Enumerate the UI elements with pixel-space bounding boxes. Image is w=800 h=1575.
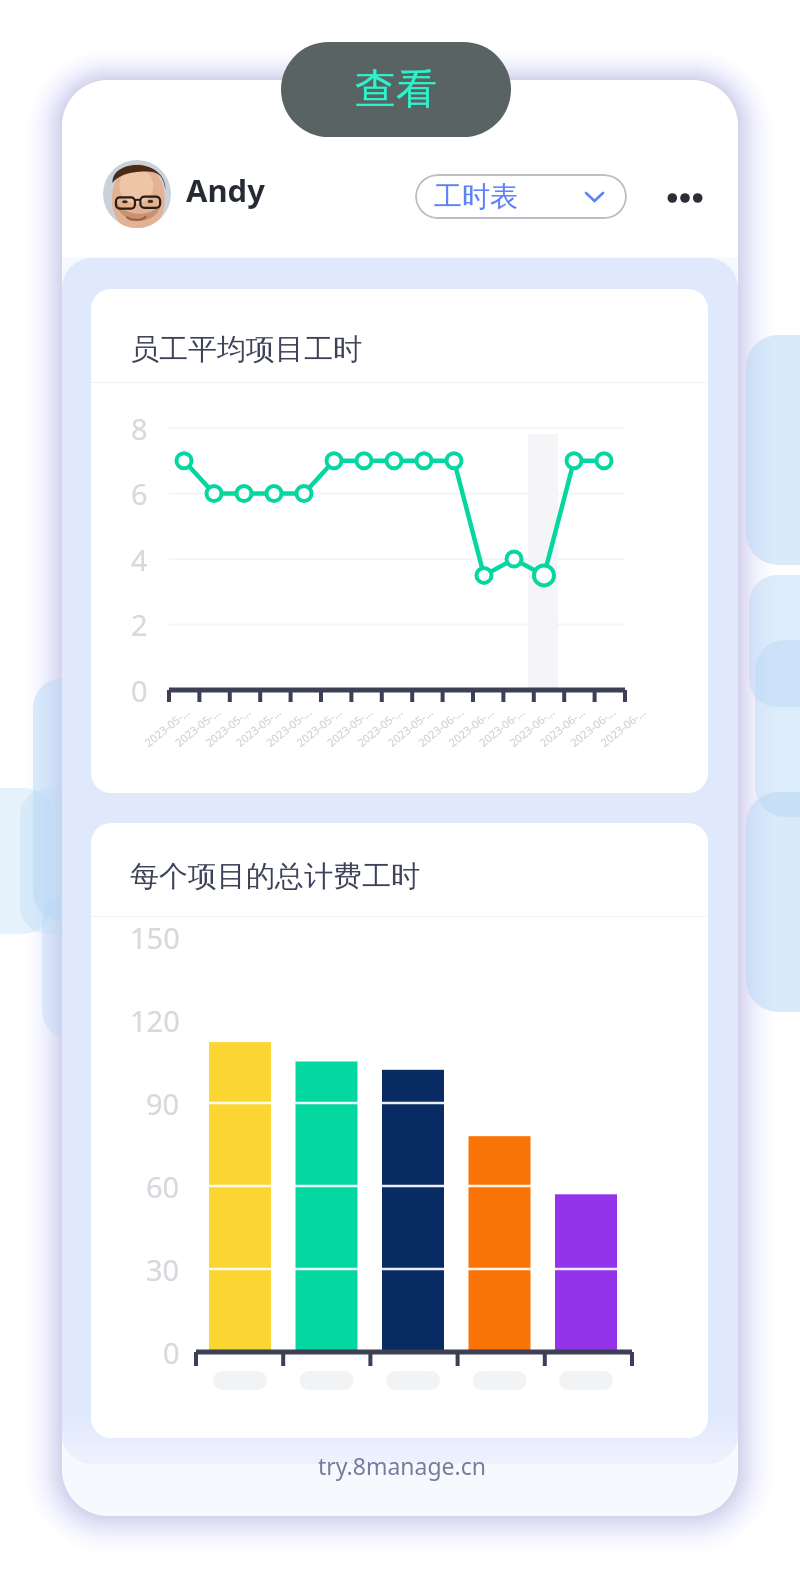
staticText: 工时表 [434, 179, 518, 214]
button[interactable]: More options [659, 172, 711, 224]
staticText: 每个项目的总计费工时 [130, 858, 420, 895]
button[interactable]: 工时表 [415, 174, 627, 219]
staticText: 查看 [355, 64, 437, 116]
staticText: 员工平均项目工时 [130, 331, 362, 368]
staticText: Andy [186, 169, 265, 211]
button[interactable]: Andy [103, 160, 265, 228]
button[interactable]: 查看 [281, 42, 511, 137]
staticText: try.8manage.cn [64, 1450, 740, 1481]
